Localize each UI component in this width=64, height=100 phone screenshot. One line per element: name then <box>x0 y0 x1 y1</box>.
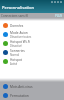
staticText: Désactivé <box>10 44 22 48</box>
staticText: Permutation <box>10 94 29 98</box>
staticText: Activé <box>10 62 18 66</box>
staticText: Mots Anti-virus <box>10 85 33 89</box>
staticText: PLUS <box>55 14 63 18</box>
staticText: Normal <box>10 53 20 57</box>
button[interactable]: Permutation <box>0 91 64 100</box>
button[interactable]: Sonneries <box>0 48 64 57</box>
staticText: Hotspot Wi-Fi <box>10 40 31 44</box>
staticText: Données <box>10 24 24 28</box>
button[interactable]: Hotspot Wi-Fi <box>0 39 64 48</box>
staticText: Connexions sans fil <box>1 14 29 18</box>
staticText: Mode Avion <box>10 31 28 35</box>
staticText: Hotspot <box>10 58 23 62</box>
staticText: Désactiver toutes <box>10 35 32 39</box>
button[interactable]: Mots Anti-virus <box>0 82 64 91</box>
staticText: Sonneries <box>10 49 25 53</box>
button[interactable]: Mode Avion <box>0 30 64 39</box>
button[interactable]: Données <box>0 21 64 30</box>
staticText: Personnalisation <box>2 5 35 10</box>
button[interactable]: Hotspot <box>0 57 64 66</box>
